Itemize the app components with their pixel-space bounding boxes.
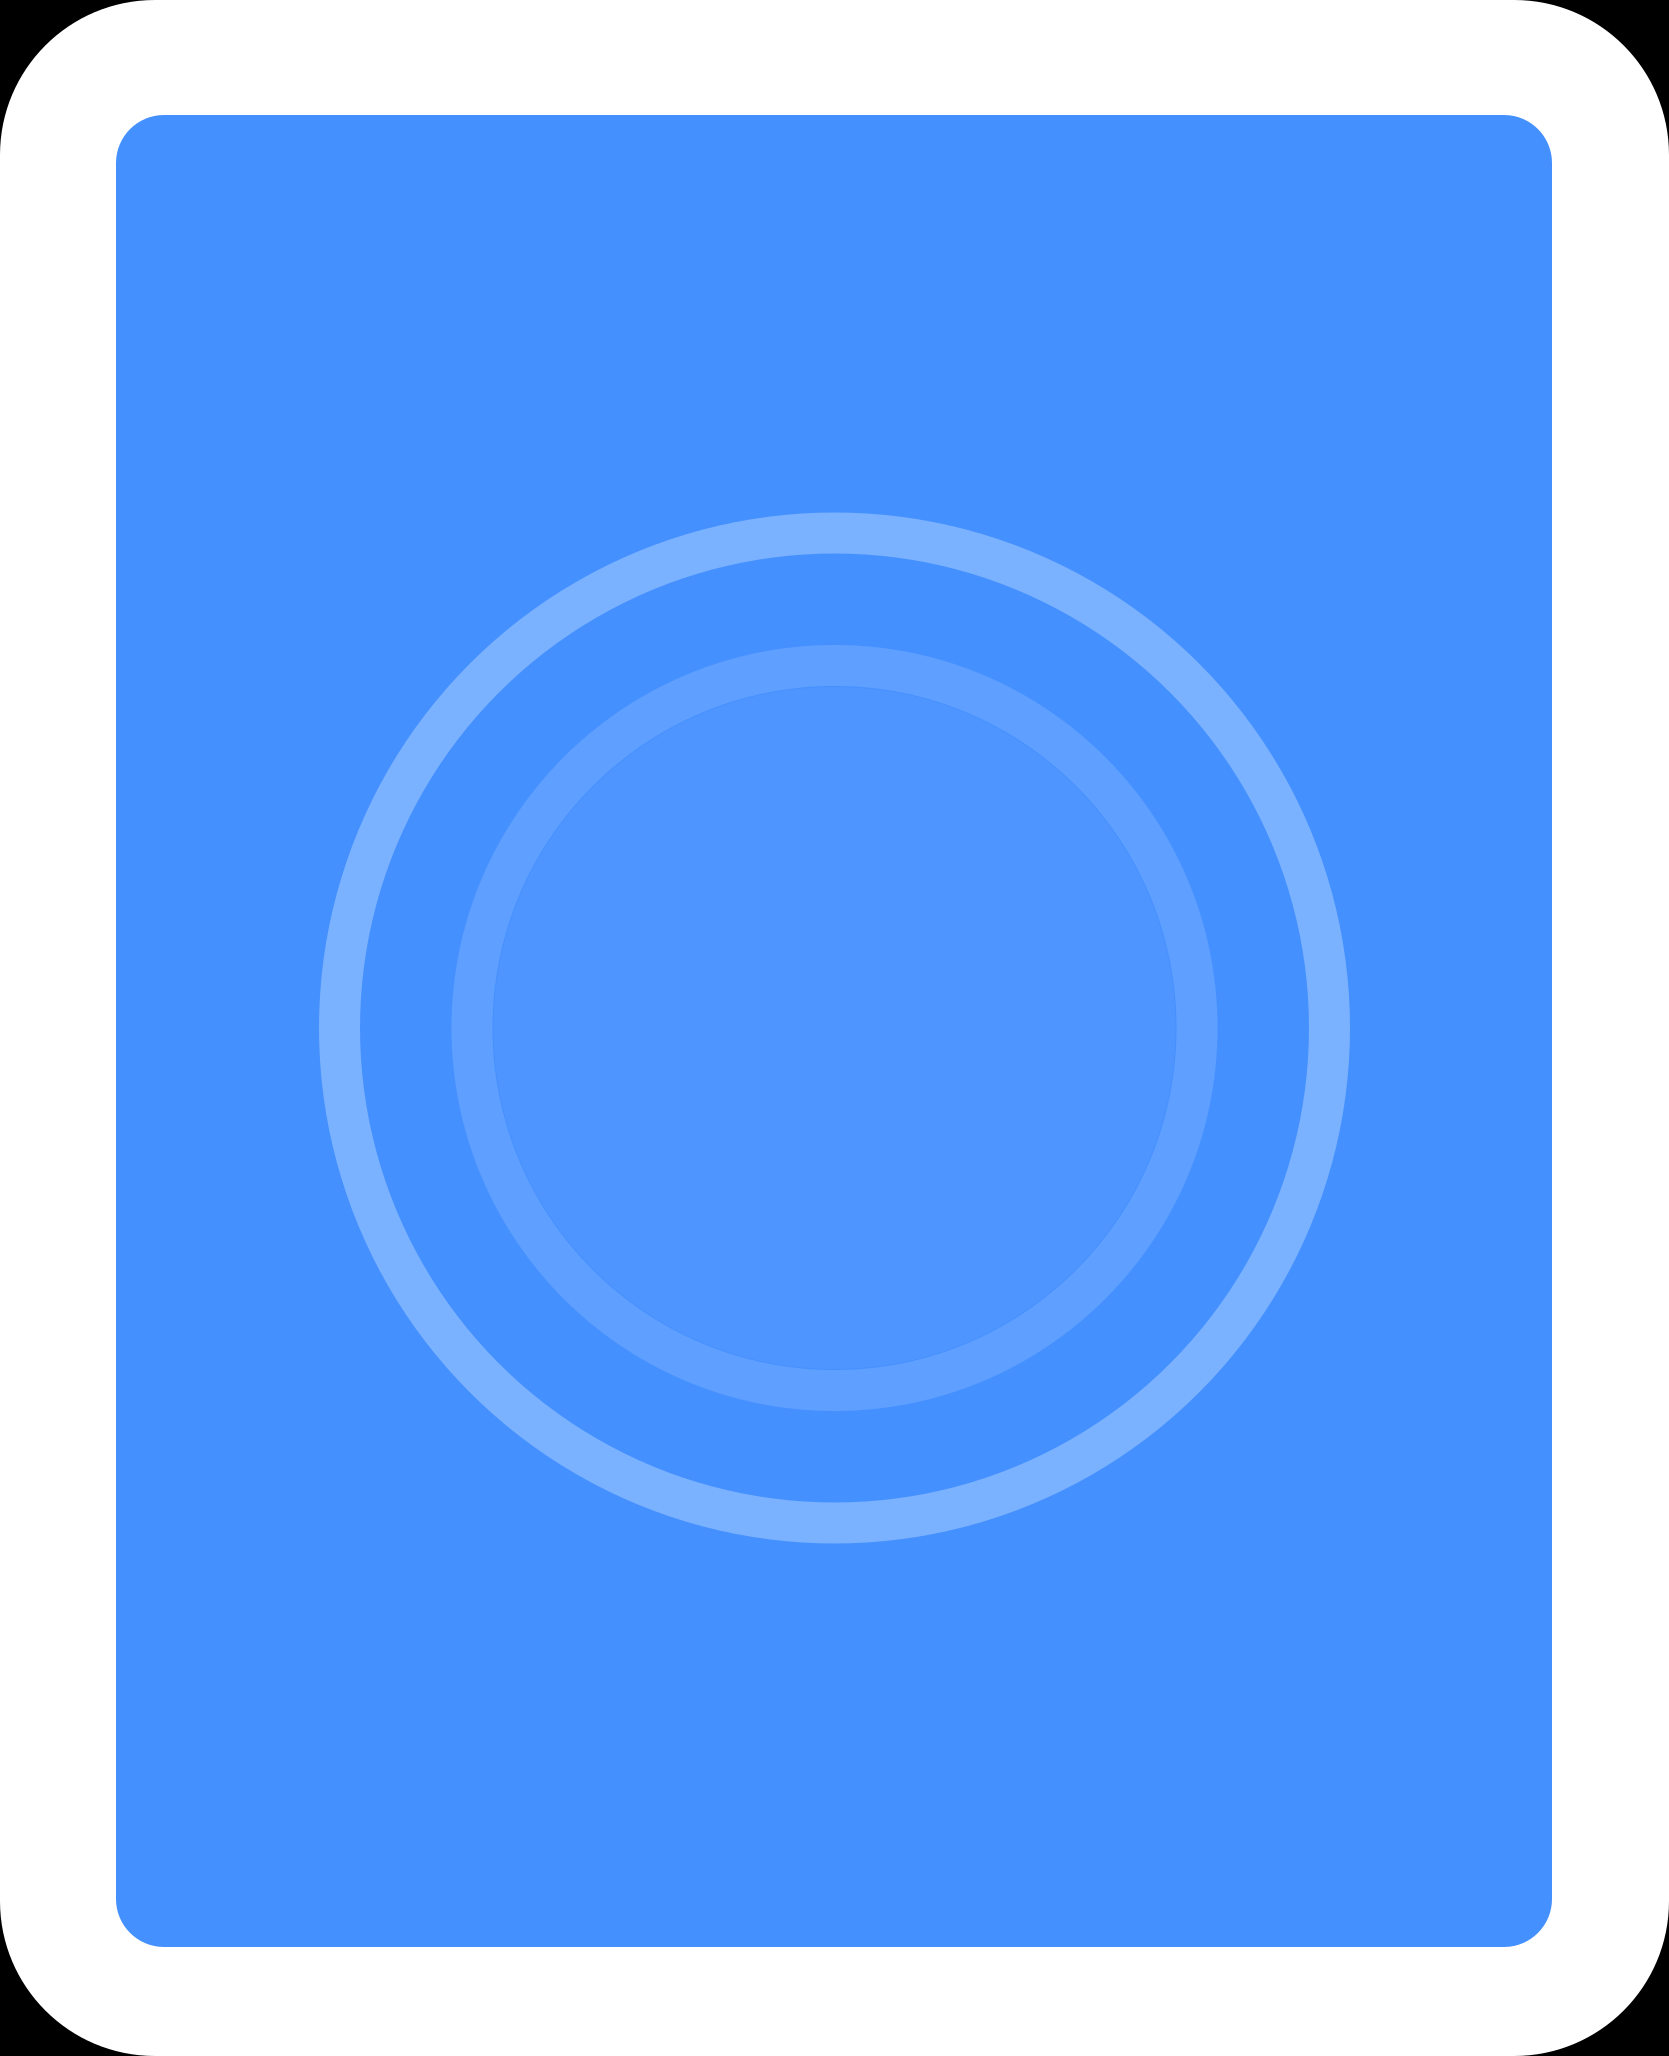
button[interactable]: Start listening [319, 512, 1350, 1543]
